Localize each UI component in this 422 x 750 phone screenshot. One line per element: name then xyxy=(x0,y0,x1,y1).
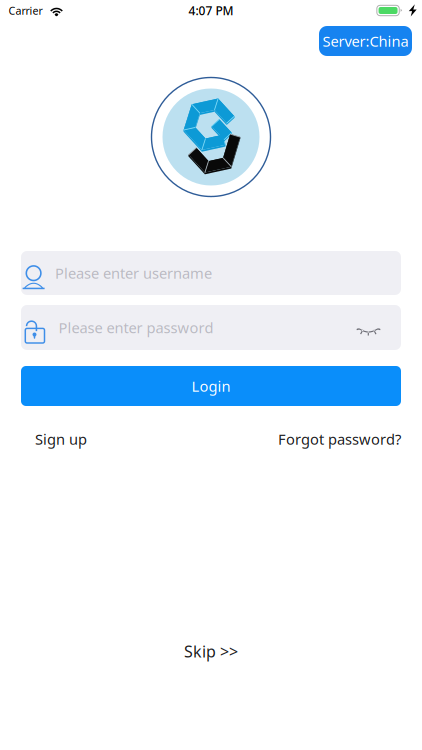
button[interactable]: Skip >> xyxy=(184,641,238,662)
button[interactable]: Login xyxy=(21,366,401,406)
staticText: Carrier xyxy=(8,3,42,18)
staticText: Forgot password? xyxy=(278,429,401,449)
staticText: Server:China xyxy=(322,31,408,51)
staticText: Sign up xyxy=(35,429,87,449)
button[interactable]: Forgot password? xyxy=(278,429,401,449)
staticText: Please enter username xyxy=(55,263,212,283)
staticText: Please enter password xyxy=(58,318,213,337)
staticText: Skip >> xyxy=(184,641,238,662)
button[interactable]: Show password xyxy=(363,310,397,344)
button[interactable]: Sign up xyxy=(35,429,87,449)
staticText: Login xyxy=(191,376,230,396)
staticText: 4:07 PM xyxy=(188,2,233,18)
button[interactable]: Server:China xyxy=(319,26,412,56)
